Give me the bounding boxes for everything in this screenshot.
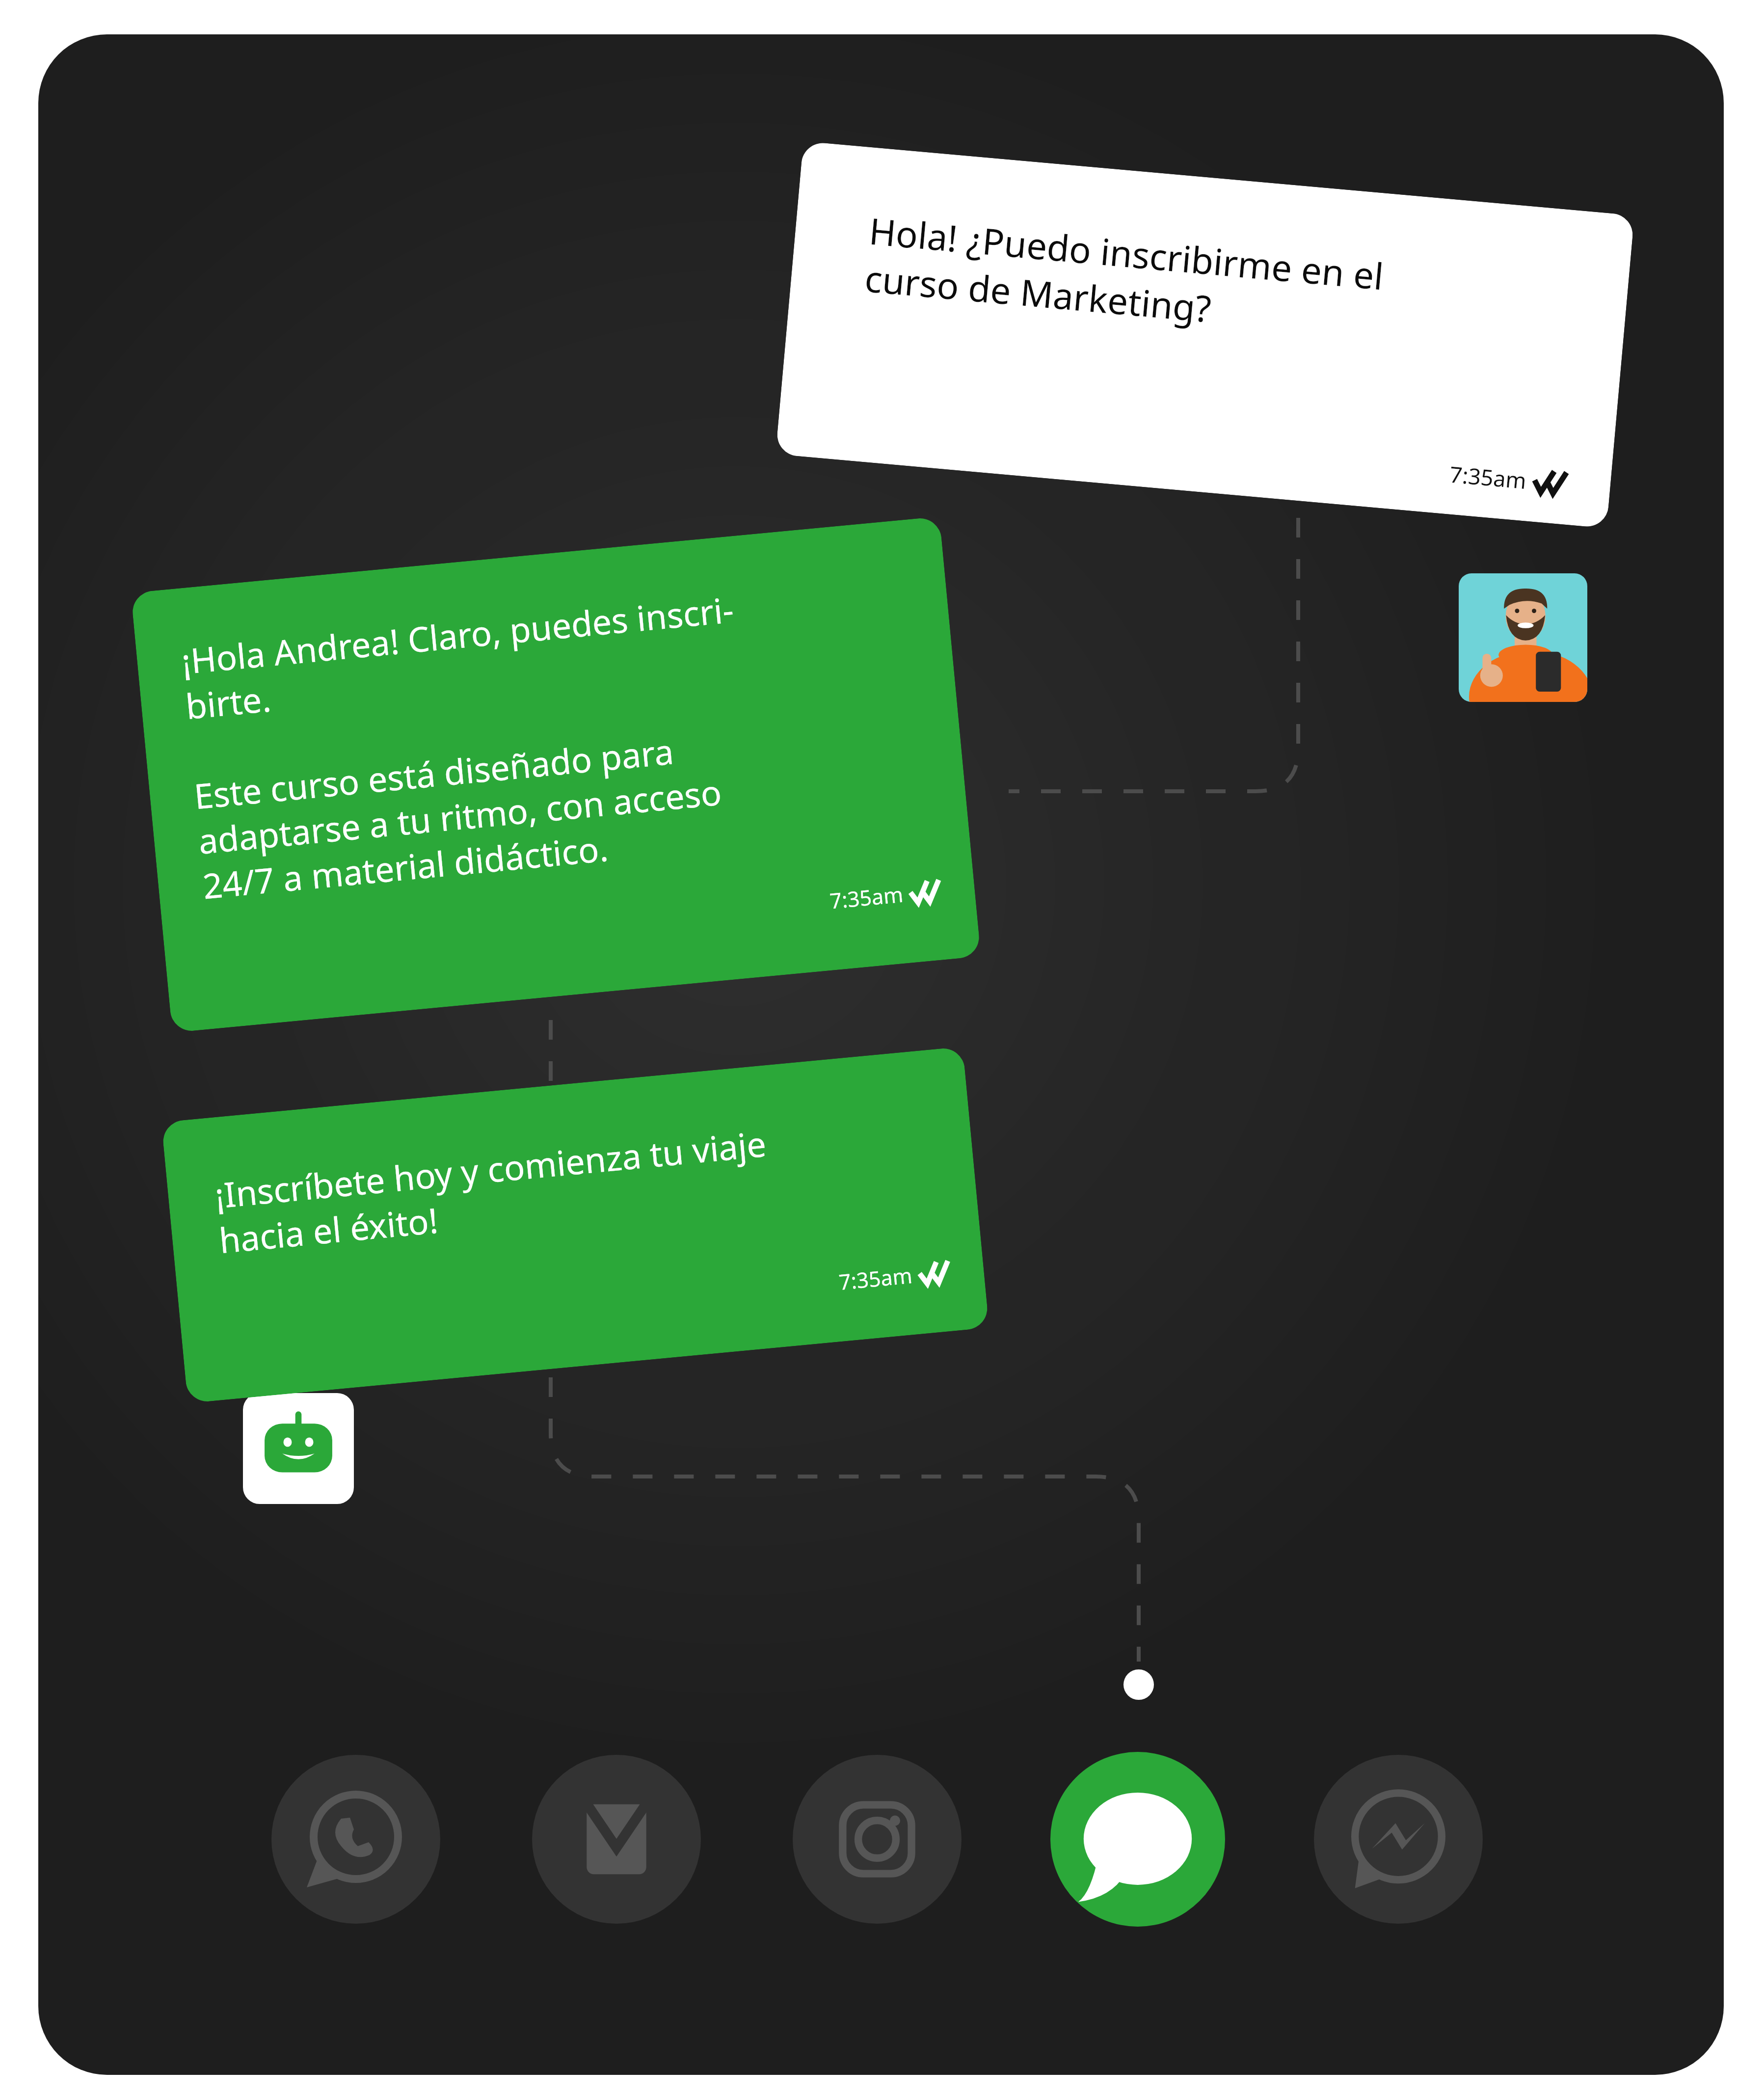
staticText: ¡Inscríbete hoy y comienza tu viaje haci… xyxy=(213,1120,773,1264)
button[interactable]: Foto de perfil de Andrea xyxy=(1459,573,1587,702)
button[interactable]: Asistente bot xyxy=(243,1393,354,1504)
button[interactable]: Mensaje del bot: ¡Hola Andrea! Claro, pu… xyxy=(131,516,981,1033)
button[interactable]: Messenger xyxy=(1311,1752,1486,1927)
staticText: ¡Hola Andrea! Claro, puedes inscri- birt… xyxy=(179,585,757,909)
staticText: Hola! ¿Puedo inscribirme en el curso de … xyxy=(863,205,1386,348)
button[interactable]: Instagram xyxy=(790,1752,964,1927)
button[interactable]: WhatsApp xyxy=(268,1752,443,1927)
staticText: 7:35am xyxy=(838,1261,914,1296)
staticText: 7:35am xyxy=(1448,459,1528,495)
staticText: 7:35am xyxy=(828,879,904,915)
button[interactable]: Mensaje: Hola! ¿Puedo inscribirme en el … xyxy=(775,141,1634,528)
button[interactable]: Mensajes xyxy=(1050,1752,1225,1927)
button[interactable]: Correo xyxy=(529,1752,704,1927)
button[interactable]: Mensaje del bot: ¡Inscríbete hoy y comie… xyxy=(161,1047,989,1403)
